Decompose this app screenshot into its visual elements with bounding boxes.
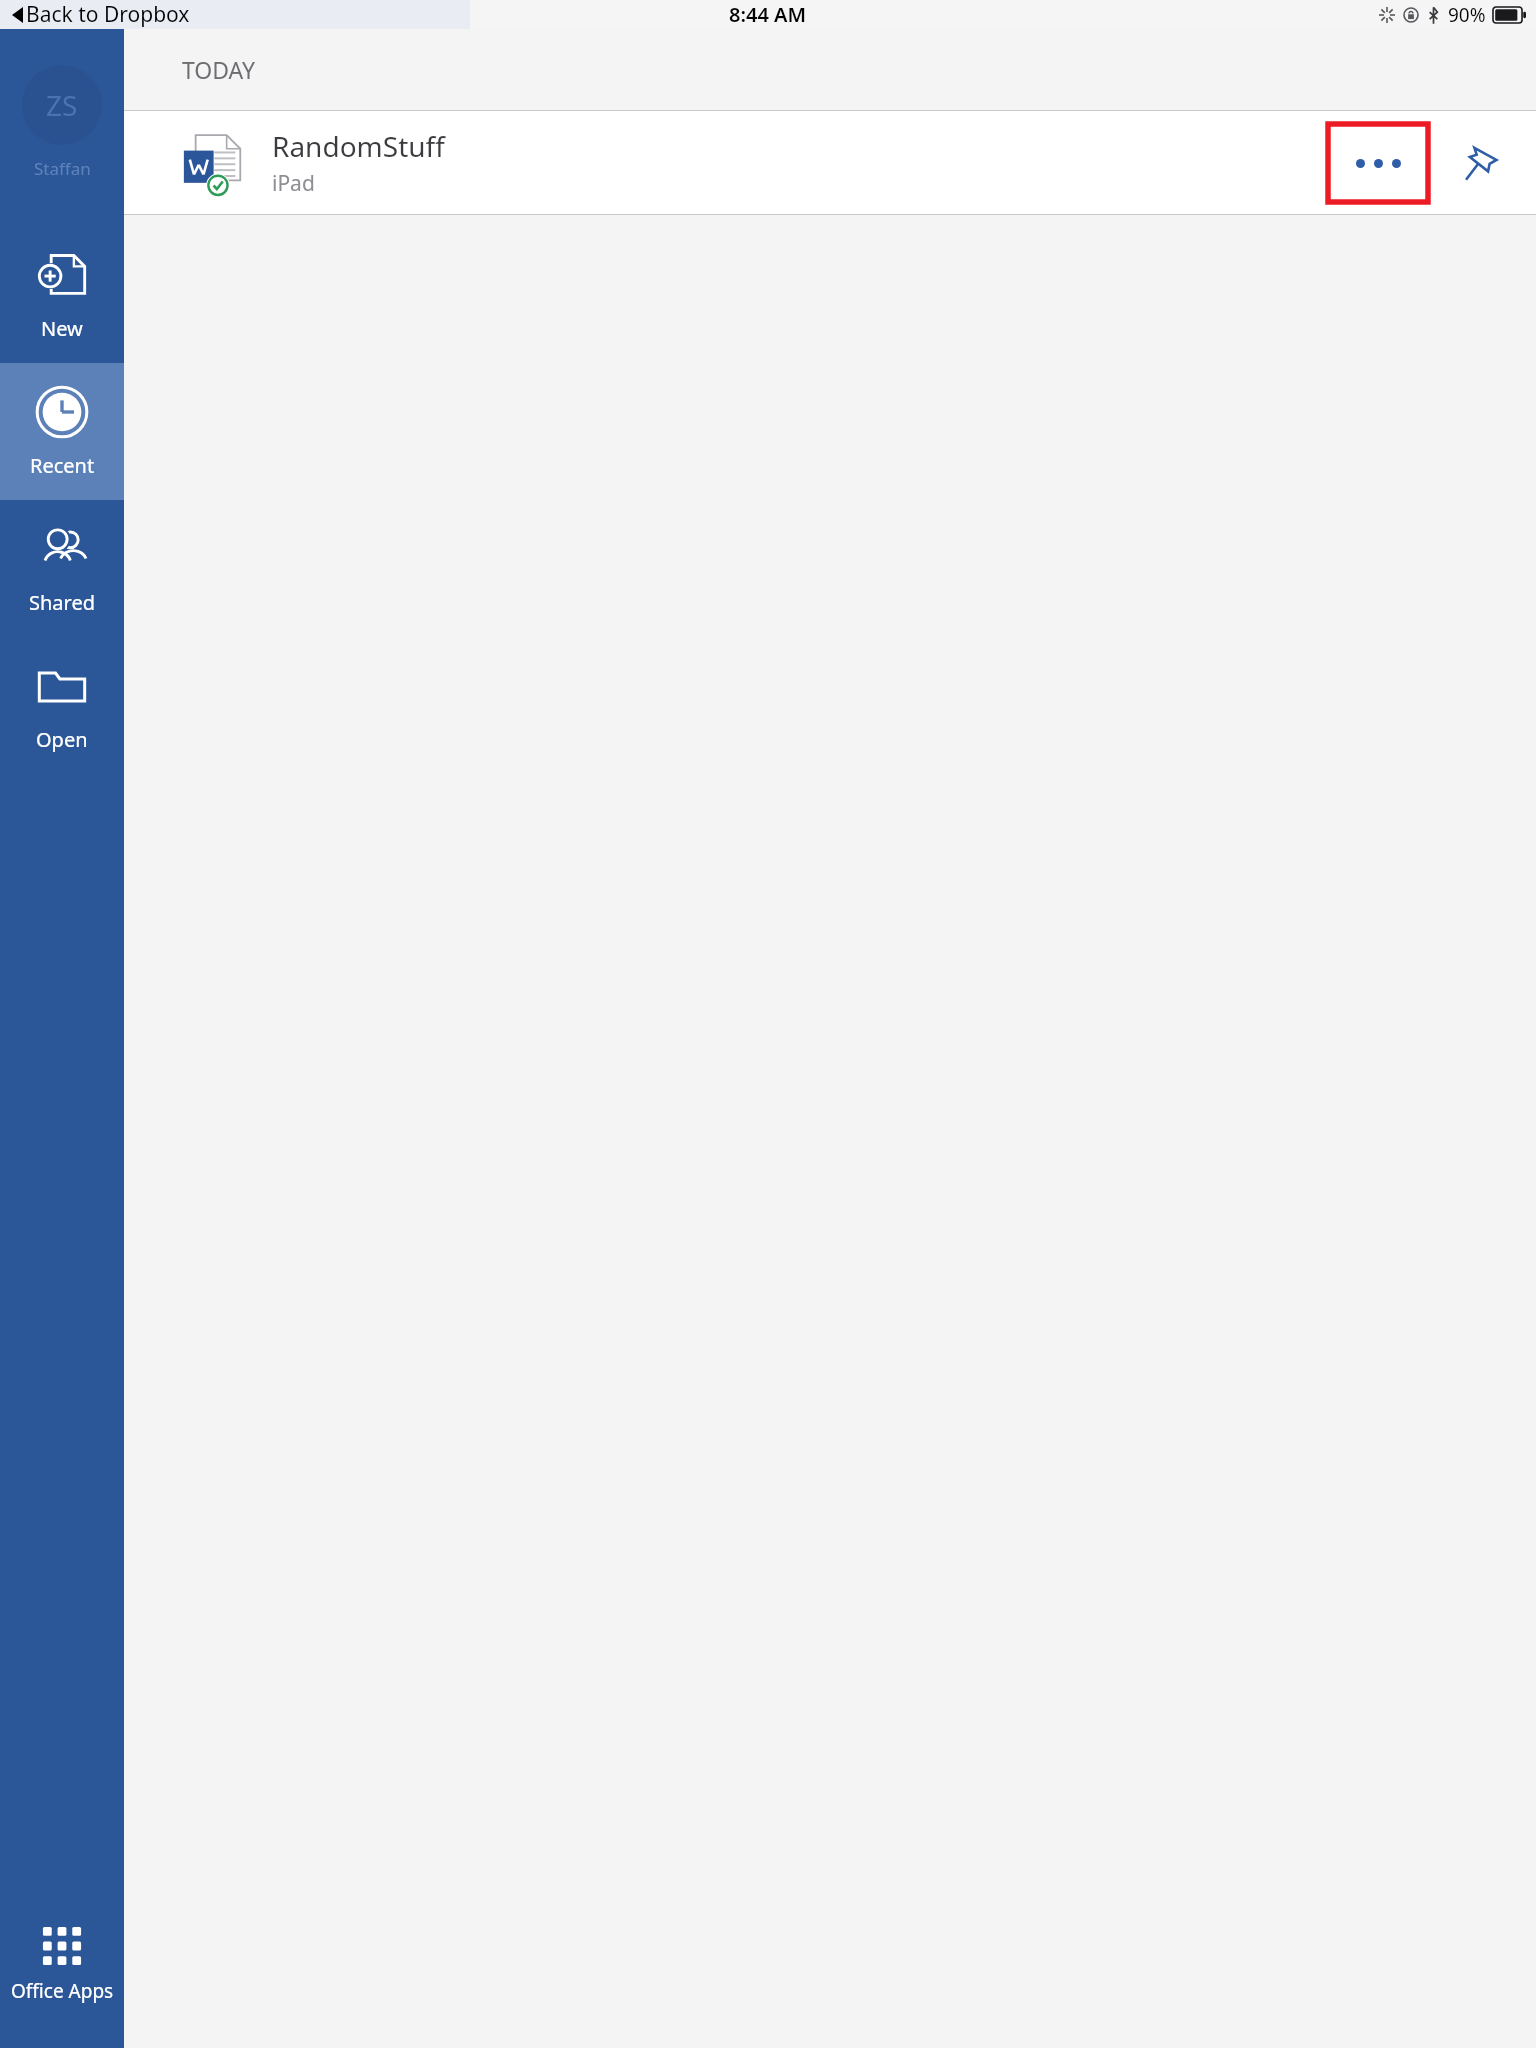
staticText: TODAY — [182, 54, 255, 85]
staticText: New — [41, 315, 83, 342]
button[interactable]: More options — [1328, 124, 1428, 202]
staticText: Staffan — [34, 157, 91, 180]
button[interactable]: Shared — [0, 500, 124, 637]
staticText: Shared — [29, 589, 95, 616]
staticText: 90% — [1448, 2, 1486, 28]
button[interactable]: New — [0, 226, 124, 363]
button[interactable]: Office Apps — [0, 1924, 124, 2048]
button[interactable]: Pin — [1454, 135, 1510, 191]
button[interactable]: Back to Dropbox — [12, 0, 190, 29]
staticText: RandomStuff — [272, 127, 445, 165]
staticText: Recent — [30, 452, 95, 479]
button[interactable]: Open — [0, 637, 124, 774]
staticText: ZS — [46, 86, 78, 124]
staticText: Office Apps — [11, 1978, 114, 2004]
staticText: Open — [36, 726, 88, 753]
staticText: iPad — [272, 169, 315, 198]
button[interactable]: Account — [22, 65, 102, 145]
staticText: 8:44 AM — [729, 1, 807, 28]
staticText: Back to Dropbox — [26, 0, 190, 29]
button[interactable]: Recent — [0, 363, 124, 500]
button[interactable]: RandomStuff — [124, 111, 1536, 214]
